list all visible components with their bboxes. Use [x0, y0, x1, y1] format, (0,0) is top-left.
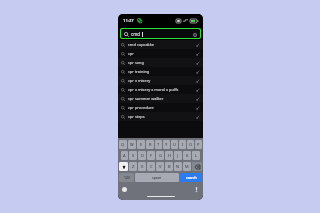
staticText: cmd cupcakke	[128, 42, 154, 47]
button[interactable]: N	[174, 162, 182, 171]
staticText: 11:37	[123, 18, 134, 24]
button[interactable]: cmd	[121, 29, 200, 38]
staticText: P	[197, 142, 200, 147]
button[interactable]: 123	[119, 173, 134, 182]
staticText: H	[168, 153, 171, 158]
button[interactable]: G	[156, 151, 164, 160]
staticText: cpr summer walker	[128, 96, 164, 101]
staticText: S	[132, 153, 135, 158]
button[interactable]: B	[165, 162, 173, 171]
button[interactable]: C	[147, 162, 155, 171]
staticText: cmd	[131, 31, 141, 37]
button[interactable]: Y	[163, 140, 170, 149]
staticText: W	[130, 142, 134, 147]
staticText: Y	[165, 142, 168, 147]
button[interactable]: S	[129, 151, 137, 160]
staticText: U	[173, 142, 176, 147]
button[interactable]: Clear search	[192, 32, 197, 37]
button[interactable]: Z	[129, 162, 137, 171]
other: Insert suggestion	[196, 115, 200, 119]
other: Insert suggestion	[196, 88, 200, 92]
other: Insert suggestion	[196, 79, 200, 83]
other: Insert suggestion	[196, 43, 200, 47]
button[interactable]: J	[174, 151, 182, 160]
button[interactable]: Voice input	[193, 186, 200, 193]
button[interactable]: Emoji	[121, 186, 128, 193]
button[interactable]: E	[137, 140, 145, 149]
button[interactable]: A	[121, 151, 128, 160]
button[interactable]: K	[183, 151, 191, 160]
staticText: I	[182, 142, 184, 147]
button[interactable]: L	[192, 151, 200, 160]
button[interactable]: cpr	[118, 49, 203, 58]
staticText: cpr	[128, 51, 134, 56]
button[interactable]: Shift	[119, 162, 128, 171]
staticText: D	[141, 153, 144, 158]
staticText: B	[168, 164, 171, 169]
staticText: space	[152, 175, 162, 180]
button[interactable]: search	[180, 173, 202, 182]
staticText: F	[150, 153, 153, 158]
staticText: O	[189, 142, 193, 147]
staticText: 123	[124, 175, 130, 180]
button[interactable]: I	[179, 140, 186, 149]
other: Insert suggestion	[196, 70, 200, 74]
button[interactable]: cpr song	[118, 58, 203, 67]
button[interactable]: M	[183, 162, 191, 171]
staticText: R	[149, 142, 152, 147]
button[interactable]: cmd cupcakke	[118, 40, 203, 49]
button[interactable]: cpr x misery	[118, 76, 203, 85]
button[interactable]: W	[128, 140, 136, 149]
staticText: M	[185, 164, 189, 169]
button[interactable]: T	[155, 140, 162, 149]
staticText: K	[186, 153, 189, 158]
staticText: cpr steps	[128, 114, 145, 119]
button[interactable]: X	[138, 162, 146, 171]
staticText: cpr song	[128, 60, 144, 65]
other: Insert suggestion	[196, 61, 200, 65]
other: Insert suggestion	[196, 52, 200, 56]
button[interactable]: V	[156, 162, 164, 171]
button[interactable]: cpr procedure	[118, 103, 203, 112]
button[interactable]: Backspace	[192, 162, 202, 171]
button[interactable]: R	[146, 140, 154, 149]
button[interactable]: space	[135, 173, 179, 182]
other: Insert suggestion	[196, 97, 200, 101]
button[interactable]: cpr training	[118, 67, 203, 76]
staticText: A	[123, 153, 126, 158]
staticText: search	[186, 175, 197, 180]
staticText: G	[159, 153, 162, 158]
staticText: L	[195, 153, 198, 158]
button[interactable]: D	[138, 151, 146, 160]
staticText: E	[140, 142, 143, 147]
staticText: Z	[132, 164, 135, 169]
staticText: J	[177, 153, 179, 158]
staticText: Q	[121, 142, 125, 147]
staticText: N	[176, 164, 180, 169]
button[interactable]: Q	[119, 140, 127, 149]
button[interactable]: cpr steps	[118, 112, 203, 121]
staticText: V	[159, 164, 162, 169]
button[interactable]: F	[147, 151, 155, 160]
staticText: cpr training	[128, 69, 150, 74]
staticText: C	[150, 164, 153, 169]
button[interactable]: P	[195, 140, 202, 149]
other: Insert suggestion	[196, 106, 200, 110]
button[interactable]: O	[187, 140, 194, 149]
staticText: cpr x misery	[128, 78, 151, 83]
staticText: cpr x misery x moral x puffs	[128, 87, 179, 92]
button[interactable]: H	[165, 151, 173, 160]
button[interactable]: U	[171, 140, 178, 149]
staticText: cpr procedure	[128, 105, 154, 110]
staticText: T	[157, 142, 160, 147]
staticText: X	[141, 164, 144, 169]
button[interactable]: cpr x misery x moral x puffs	[118, 85, 203, 94]
button[interactable]: cpr summer walker	[118, 94, 203, 103]
